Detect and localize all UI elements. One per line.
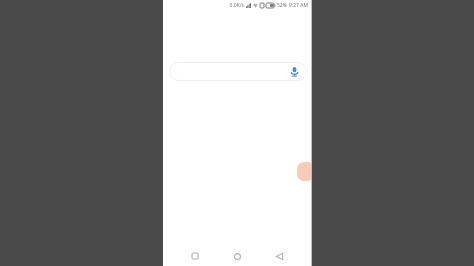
button[interactable]: Voice search xyxy=(289,66,300,77)
button[interactable]: Home xyxy=(227,246,247,266)
button[interactable]: Back xyxy=(269,246,289,266)
staticText: 0.0K/s xyxy=(229,2,244,9)
button[interactable]: Voice search xyxy=(169,62,307,81)
staticText: 9:27 AM xyxy=(289,2,308,9)
staticText: 52% xyxy=(277,2,287,9)
button[interactable]: Recent apps xyxy=(185,246,205,266)
